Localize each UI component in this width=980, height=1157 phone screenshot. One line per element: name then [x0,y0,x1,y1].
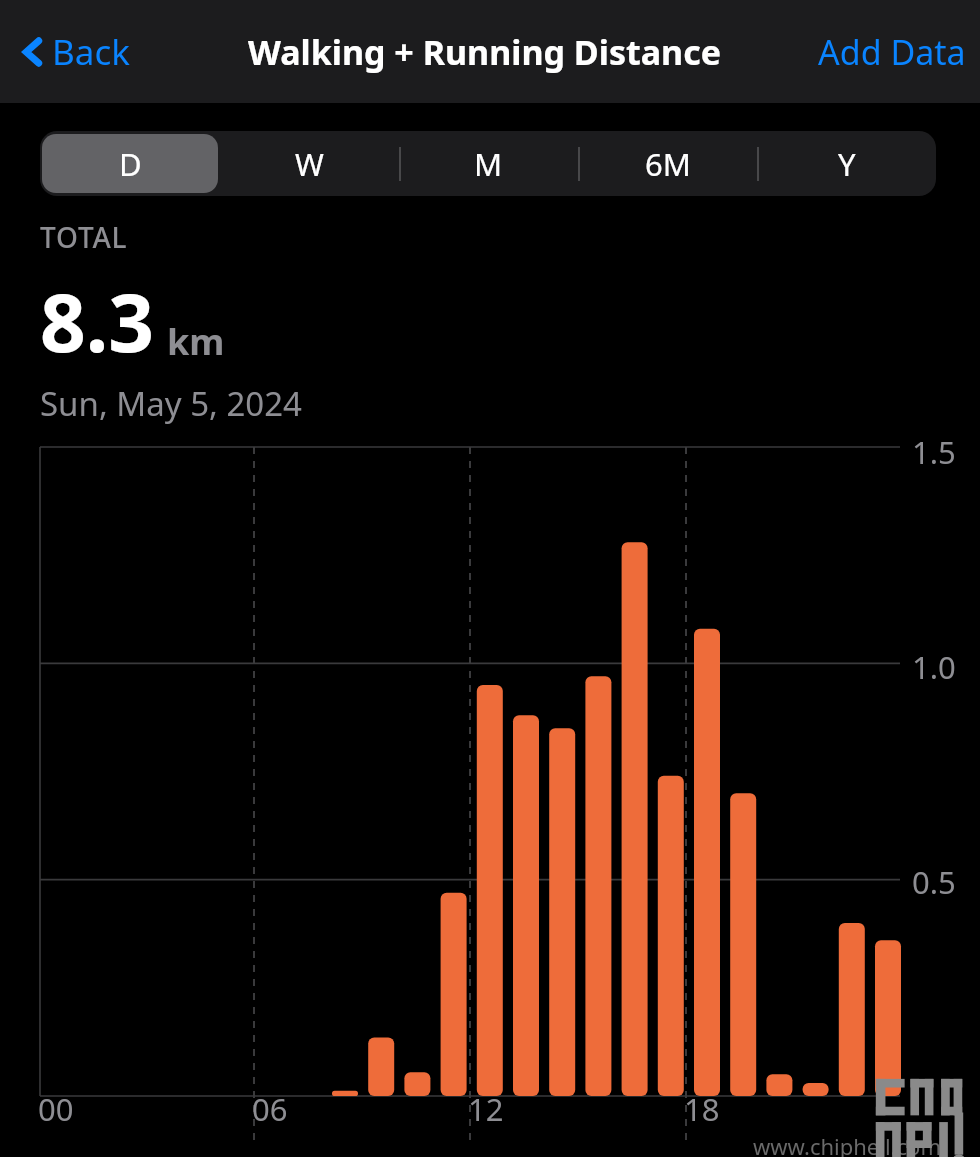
button[interactable]: Back [14,22,136,82]
staticText: 06 [252,1088,288,1130]
other: chiphell watermark [872,1076,968,1157]
button[interactable]: 6M [578,131,757,196]
staticText: Y [838,143,856,185]
staticText: 1.5 [912,431,956,473]
button[interactable]: Y [757,131,936,196]
button[interactable]: M [399,131,578,196]
staticText: www.chiphell.com [753,1131,941,1157]
staticText: 8.3 [40,266,154,375]
staticText: Back [52,28,130,76]
staticText: D [119,143,142,185]
staticText: Walking + Running Distance [248,29,722,75]
staticText: 18 [684,1088,720,1130]
staticText: W [295,143,324,185]
staticText: TOTAL [40,218,128,256]
button[interactable]: Add Data [804,21,980,83]
staticText: 00 [38,1088,74,1130]
staticText: Sun, May 5, 2024 [40,381,302,426]
staticText: 6M [645,143,691,185]
staticText: 0.5 [912,861,956,903]
staticText: 12 [468,1088,504,1130]
button[interactable]: D [40,131,220,196]
staticText: km [167,317,225,366]
button[interactable]: W [220,131,399,196]
staticText: 1.0 [912,646,956,688]
staticText: M [474,143,503,185]
staticText: Add Data [818,29,966,75]
